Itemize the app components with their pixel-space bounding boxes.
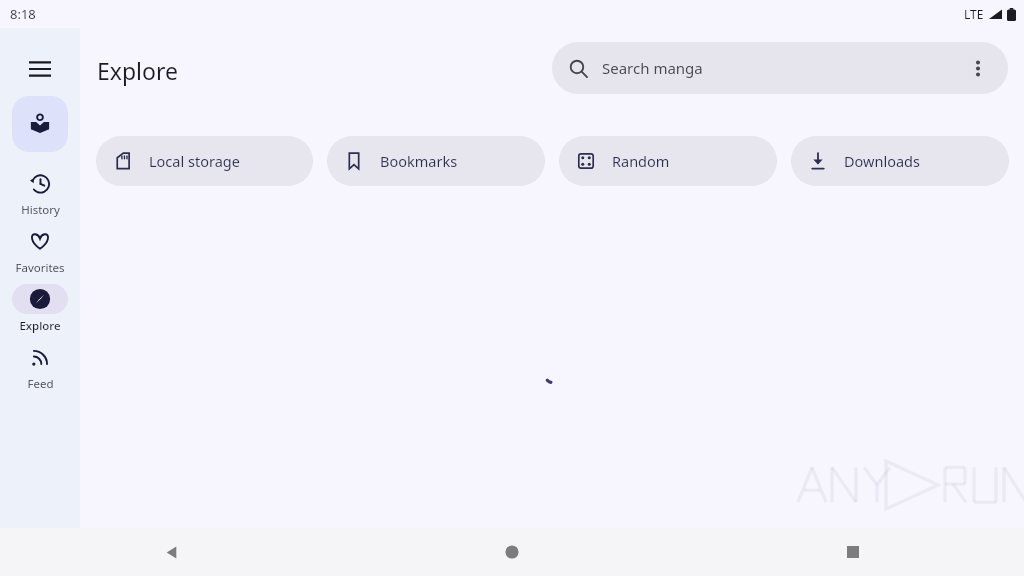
button[interactable]: Home (488, 528, 536, 576)
staticText: Feed (27, 376, 54, 392)
button[interactable]: Search manga (552, 42, 1008, 94)
staticText: LTE (964, 6, 984, 22)
staticText: Search manga (602, 58, 956, 78)
button[interactable]: Bookmarks (327, 136, 545, 186)
button[interactable]: Explore (4, 284, 76, 334)
staticText: Explore (19, 318, 61, 334)
staticText: Bookmarks (380, 151, 458, 171)
staticText: Explore (97, 55, 178, 86)
staticText: Downloads (844, 151, 920, 171)
button[interactable]: History (4, 168, 76, 218)
button[interactable]: Random (559, 136, 777, 186)
button[interactable]: Back (147, 528, 195, 576)
button[interactable]: Library (12, 96, 68, 152)
staticText: Random (612, 151, 670, 171)
button[interactable]: Downloads (791, 136, 1009, 186)
staticText: History (21, 202, 60, 218)
button[interactable]: More options (956, 46, 1000, 90)
button[interactable]: Open navigation menu (16, 45, 64, 93)
staticText: Local storage (149, 151, 240, 171)
staticText: Favorites (15, 260, 65, 276)
button[interactable]: Recent apps (829, 528, 877, 576)
button[interactable]: Favorites (4, 226, 76, 276)
button[interactable]: Local storage (96, 136, 313, 186)
staticText: 8:18 (10, 5, 36, 23)
button[interactable]: Feed (4, 342, 76, 392)
